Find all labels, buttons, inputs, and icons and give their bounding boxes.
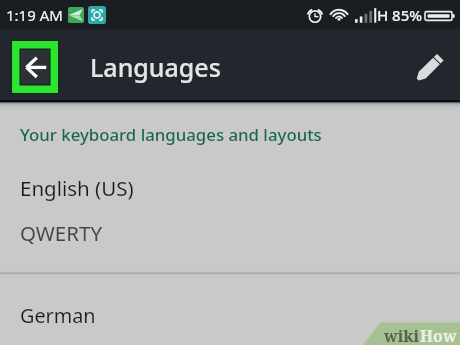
- staticText: German: [20, 302, 96, 329]
- staticText: QWERTY: [20, 219, 103, 247]
- staticText: Your keyboard languages and layouts: [20, 123, 322, 146]
- button[interactable]: Back: [11, 40, 59, 94]
- staticText: How: [420, 325, 457, 345]
- button[interactable]: English (US): [0, 162, 460, 273]
- staticText: Languages: [90, 50, 221, 84]
- staticText: 1:19 AM: [6, 5, 63, 25]
- button[interactable]: German: [0, 274, 460, 345]
- staticText: English (US): [20, 174, 134, 202]
- staticText: H 85%: [377, 5, 423, 25]
- staticText: wiki: [384, 325, 420, 345]
- button[interactable]: Edit: [412, 52, 446, 86]
